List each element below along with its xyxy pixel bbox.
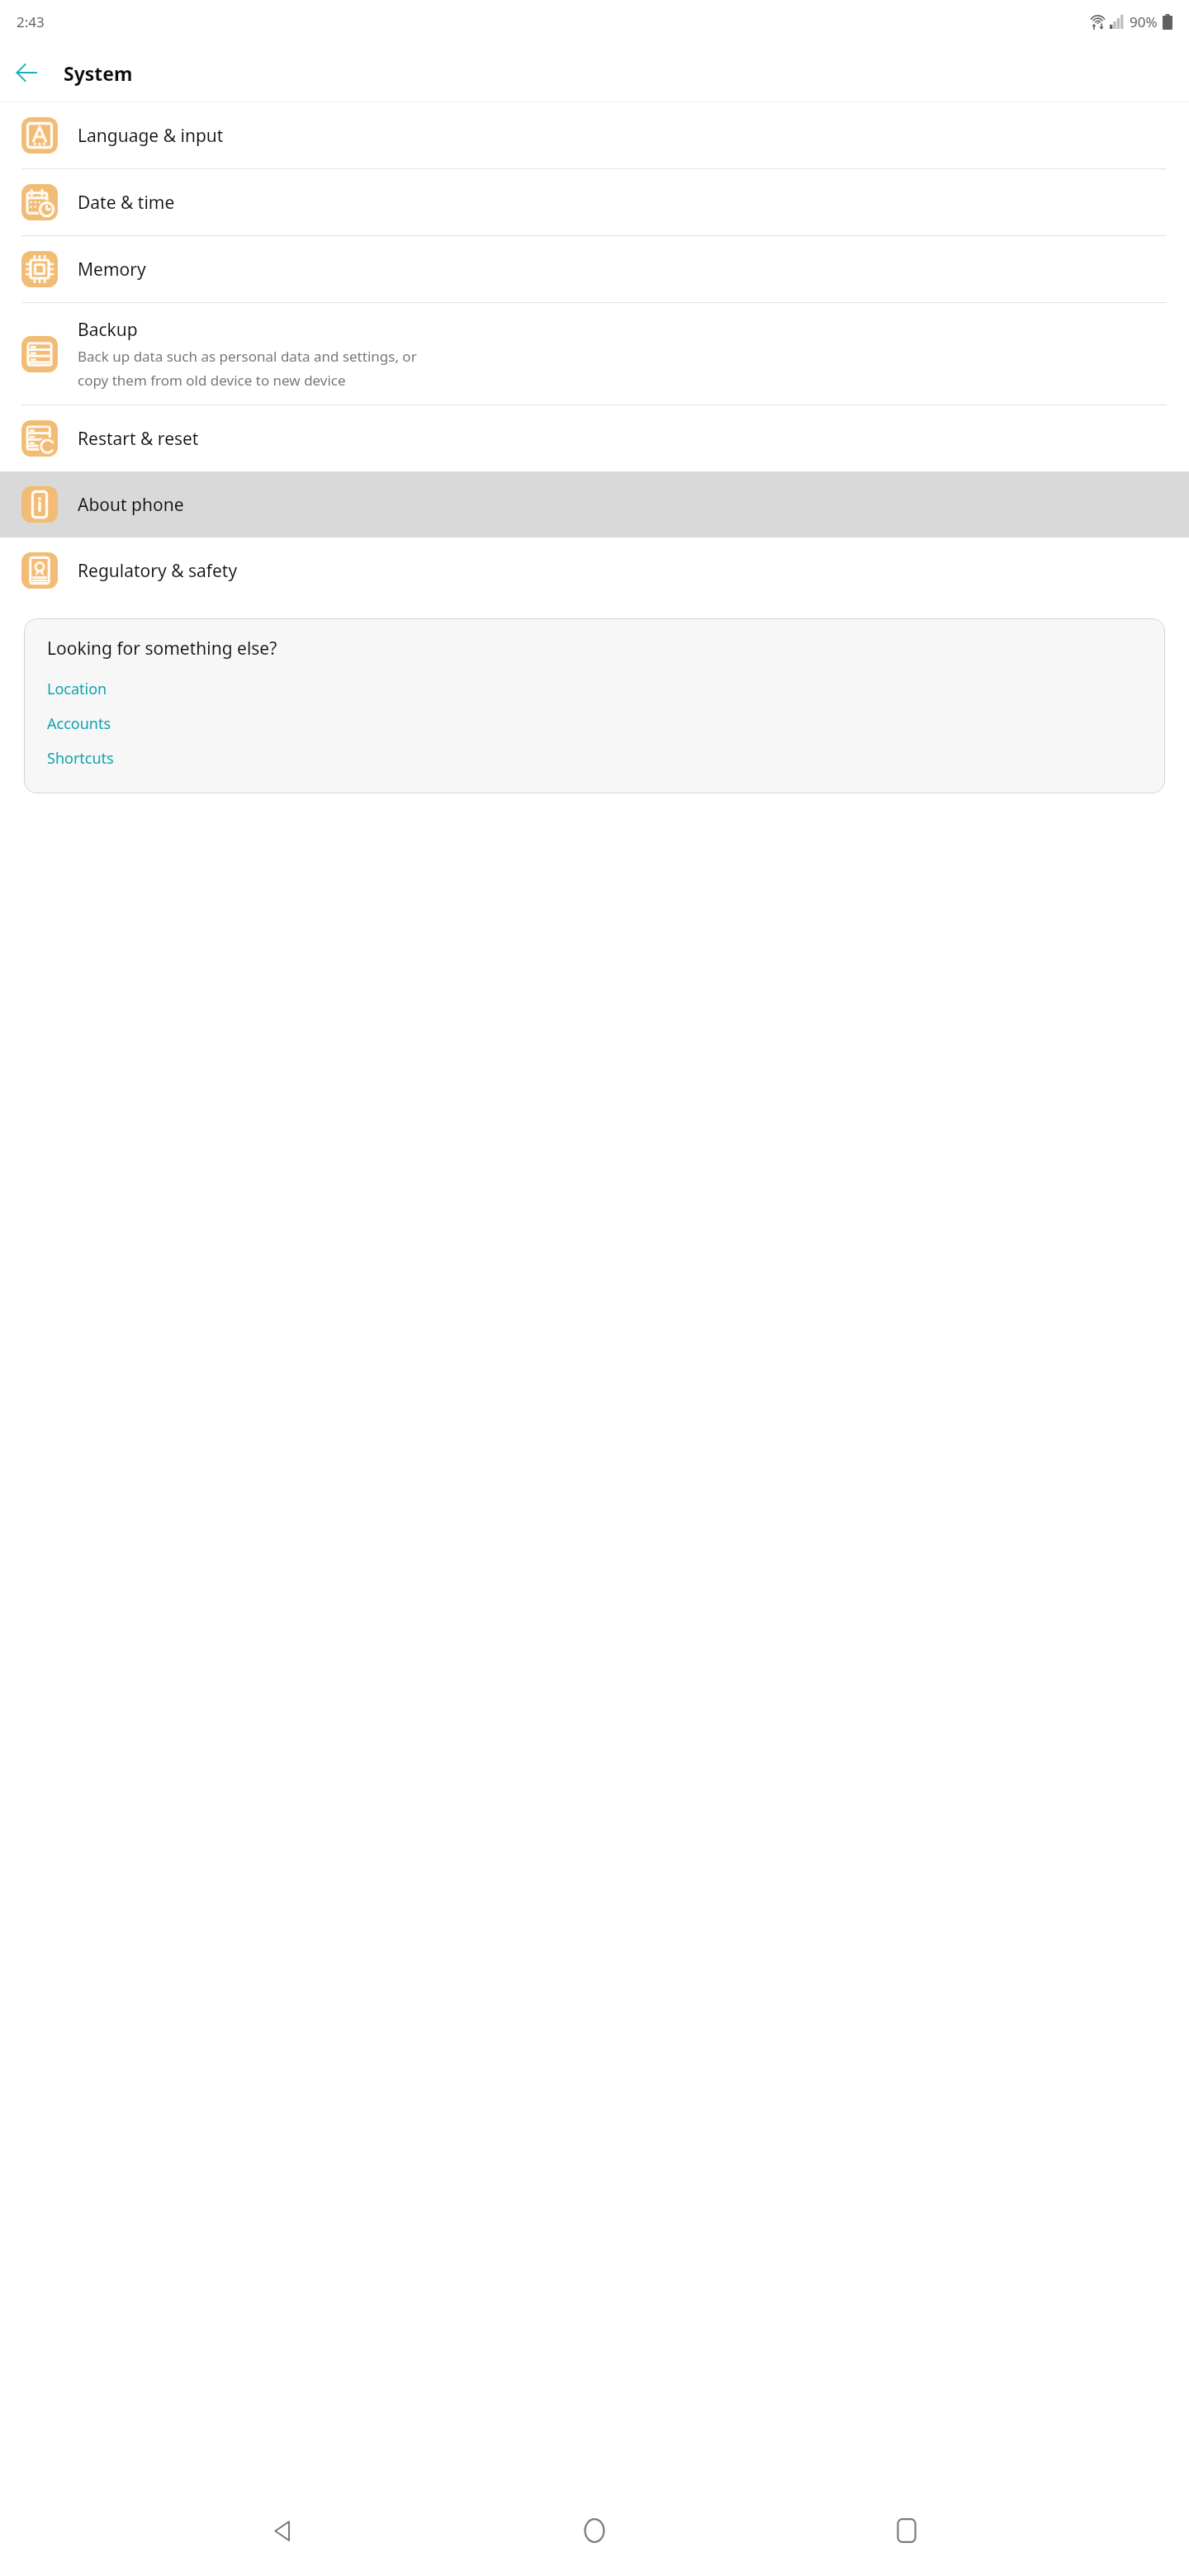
button[interactable]: Back: [253, 2501, 312, 2560]
staticText: Backup: [78, 318, 138, 342]
button[interactable]: Location: [47, 675, 107, 703]
button[interactable]: Date & time: [0, 169, 1189, 235]
staticText: Date & time: [78, 191, 175, 215]
staticText: Language & input: [78, 124, 224, 148]
staticText: System: [64, 60, 133, 86]
button[interactable]: Language & input: [0, 102, 1189, 168]
button[interactable]: Back: [7, 53, 46, 92]
button[interactable]: Shortcuts: [47, 745, 114, 772]
button[interactable]: Restart & reset: [0, 405, 1189, 471]
button[interactable]: Home: [565, 2501, 624, 2560]
staticText: Memory: [78, 258, 146, 282]
button[interactable]: Accounts: [47, 710, 111, 737]
button[interactable]: Memory: [0, 236, 1189, 302]
staticText: 2:43: [17, 12, 45, 31]
staticText: 90%: [1130, 12, 1158, 31]
button[interactable]: About phone: [0, 471, 1189, 537]
button[interactable]: Recents: [877, 2501, 936, 2560]
staticText: Looking for something else?: [47, 637, 277, 661]
button[interactable]: Backup: [0, 303, 1189, 405]
staticText: About phone: [78, 493, 184, 517]
button[interactable]: Regulatory & safety: [0, 537, 1189, 604]
staticText: Restart & reset: [78, 427, 199, 451]
staticText: Back up data such as personal data and s…: [78, 347, 417, 390]
staticText: Regulatory & safety: [78, 559, 238, 583]
